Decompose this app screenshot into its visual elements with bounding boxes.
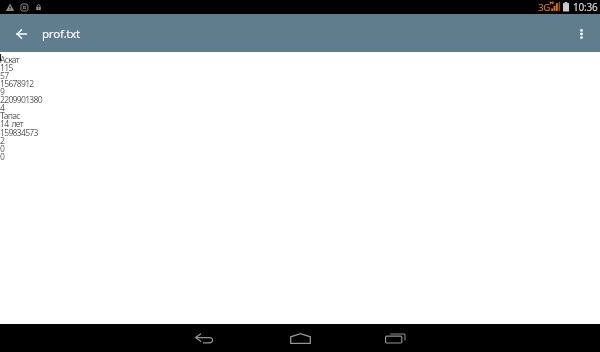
- staticText: 115: [0, 62, 13, 74]
- button[interactable]: Recent apps: [355, 324, 435, 352]
- staticText: 2209901380: [0, 94, 42, 106]
- staticText: 3G: [538, 1, 550, 14]
- staticText: prof.txt: [42, 26, 80, 42]
- staticText: Тапас: [0, 110, 20, 122]
- staticText: 0: [0, 143, 5, 155]
- staticText: 14 лет: [0, 118, 23, 130]
- staticText: 57: [0, 70, 9, 82]
- staticText: Аскат: [0, 54, 20, 66]
- button[interactable]: Back: [165, 324, 245, 352]
- staticText: 0: [0, 151, 5, 163]
- staticText: 4: [0, 102, 5, 114]
- button[interactable]: Home: [260, 324, 340, 352]
- button[interactable]: More options: [562, 14, 600, 52]
- staticText: 2: [0, 135, 5, 147]
- staticText: 159834573: [0, 127, 38, 139]
- staticText: 9: [0, 86, 5, 98]
- staticText: 10:36: [573, 0, 598, 14]
- staticText: 15678912: [0, 78, 34, 90]
- button[interactable]: Back: [3, 14, 39, 52]
